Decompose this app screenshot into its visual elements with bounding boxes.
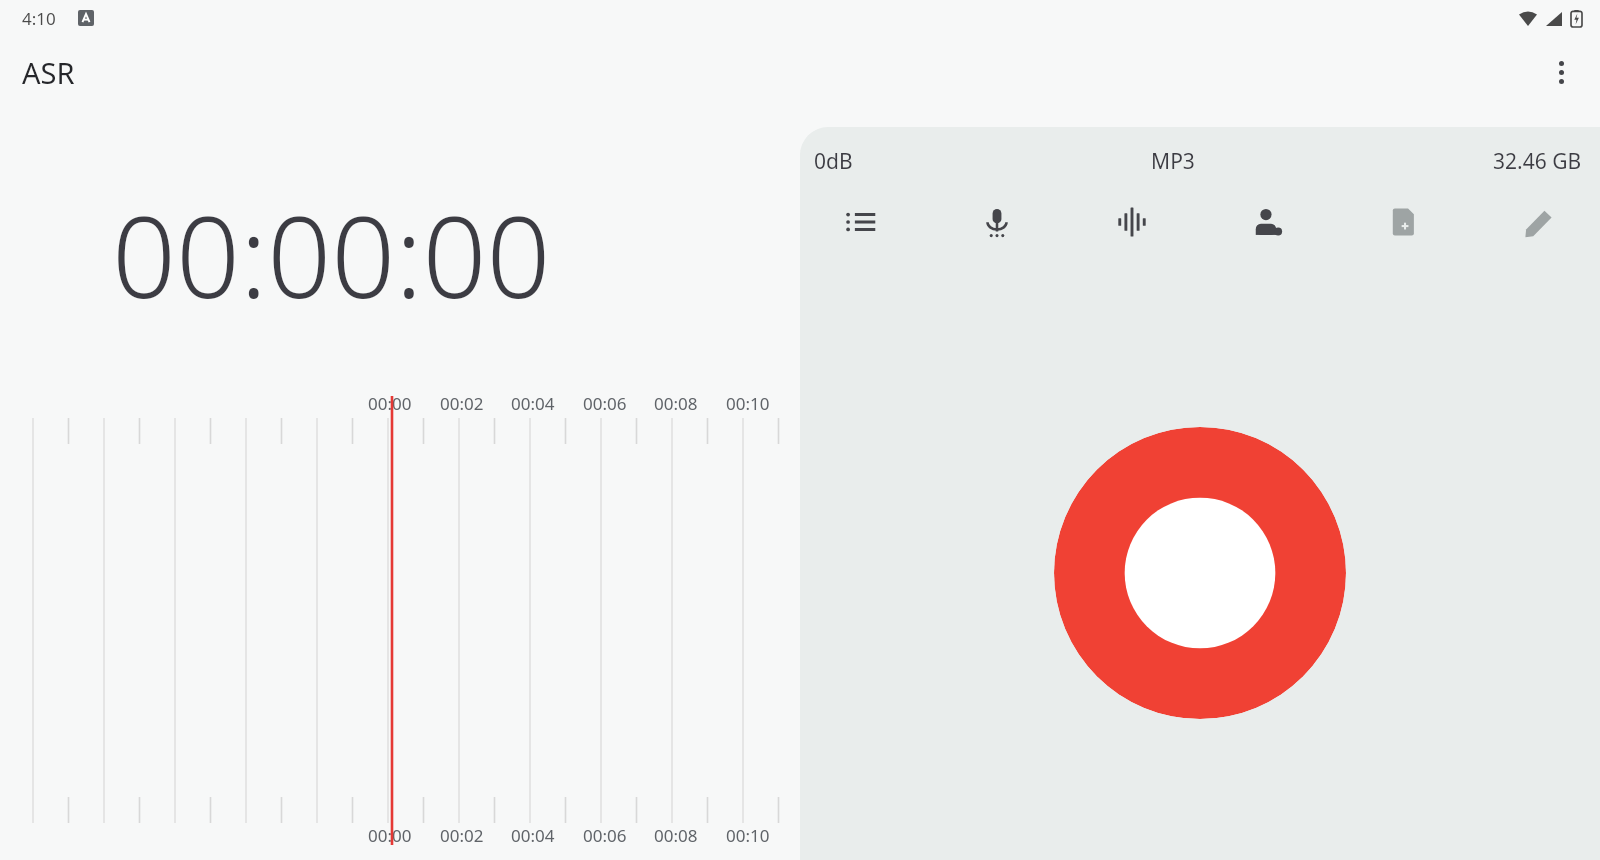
staticText: 0dB: [814, 147, 853, 176]
staticText: 4:10: [22, 7, 56, 30]
staticText: 00:02: [440, 392, 484, 415]
button[interactable]: Edit: [1512, 195, 1566, 249]
staticText: 00:06: [583, 824, 627, 847]
button[interactable]: Recording list: [834, 195, 888, 249]
staticText: 00:04: [511, 824, 555, 847]
staticText: 00:04: [511, 392, 555, 415]
staticText: ASR: [22, 53, 75, 92]
button[interactable]: Speaker tags: [1241, 195, 1295, 249]
staticText: 00:00:00: [112, 178, 551, 331]
button[interactable]: More options: [1538, 49, 1584, 95]
staticText: 32.46 GB: [1493, 147, 1582, 176]
button[interactable]: Record: [1054, 427, 1346, 719]
staticText: 00:08: [654, 392, 698, 415]
staticText: 00:02: [440, 824, 484, 847]
staticText: 00:00: [368, 824, 412, 847]
staticText: 00:06: [583, 392, 627, 415]
staticText: MP3: [853, 147, 1493, 176]
staticText: 00:10: [726, 392, 770, 415]
button[interactable]: Audio effects: [1105, 195, 1159, 249]
staticText: 00:00: [368, 392, 412, 415]
button[interactable]: Microphone settings: [970, 195, 1024, 249]
button[interactable]: New file: [1376, 195, 1430, 249]
staticText: 00:10: [726, 824, 770, 847]
staticText: 00:08: [654, 824, 698, 847]
